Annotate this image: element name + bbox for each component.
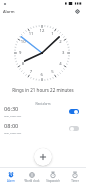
staticText: 08:00 — [4, 122, 19, 130]
staticText: Next alarm — [0, 102, 86, 106]
button[interactable]: Add alarm — [34, 148, 52, 166]
button[interactable]: World clock — [21, 170, 42, 183]
button[interactable]: 06:30 — [0, 103, 86, 119]
staticText: Alarm — [7, 179, 15, 183]
button[interactable]: Stopwatch — [42, 170, 64, 183]
button[interactable]: Alarm — [0, 170, 21, 183]
button[interactable]: Toggle alarm — [69, 126, 79, 131]
staticText: Alarm — [3, 9, 15, 14]
staticText: 06:30 — [4, 105, 19, 113]
staticText: Rings in 21 hours 22 minutes — [0, 87, 86, 93]
button[interactable]: Settings — [73, 7, 82, 16]
staticText: Mon, Every day — [4, 114, 22, 117]
button[interactable]: Toggle alarm — [69, 109, 79, 114]
staticText: Timer — [71, 179, 79, 183]
staticText: World clock — [24, 179, 40, 183]
button[interactable]: Timer — [64, 170, 86, 183]
staticText: Mon, Every day — [4, 131, 22, 134]
staticText: Stopwatch — [46, 179, 60, 183]
button[interactable]: 08:00 — [0, 120, 86, 136]
